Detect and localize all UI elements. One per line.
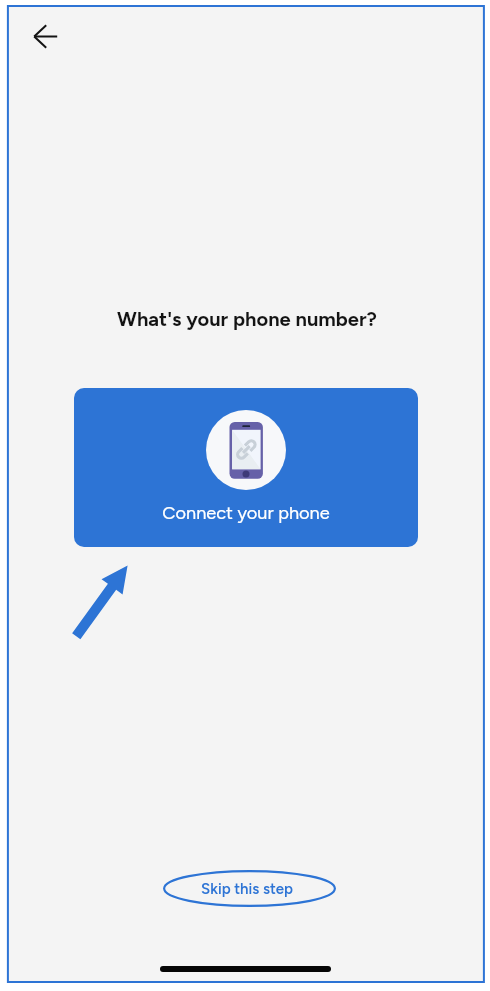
staticText: Skip this step: [201, 880, 293, 898]
staticText: Connect your phone: [74, 502, 418, 524]
staticText: What's your phone number?: [2, 307, 490, 331]
button[interactable]: Skip this step: [163, 870, 336, 907]
button[interactable]: Back: [23, 14, 68, 59]
button[interactable]: Connect your phone: [74, 388, 418, 547]
